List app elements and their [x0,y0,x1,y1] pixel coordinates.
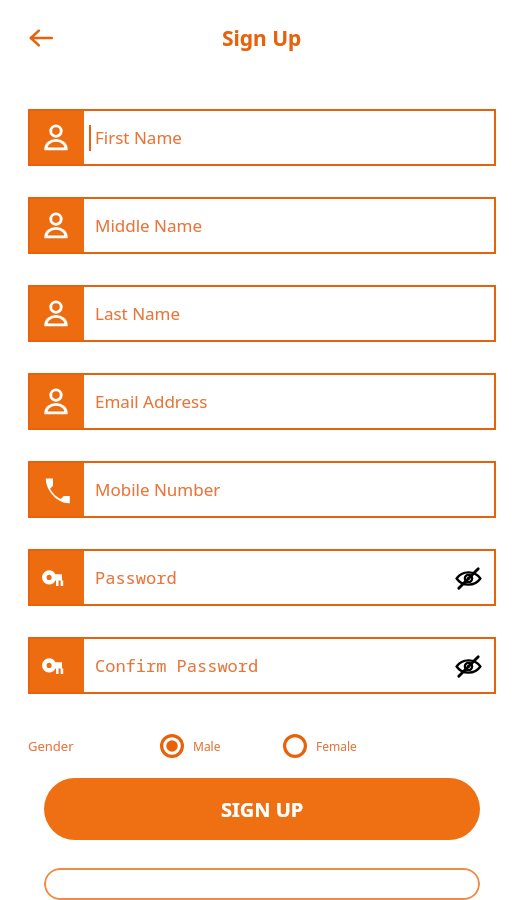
button[interactable]: Middle Name [28,197,496,254]
button[interactable]: Toggle password visibility [444,554,492,602]
staticText: Middle Name [95,214,203,237]
button[interactable]: SIGN UP [44,778,480,840]
button[interactable]: Back [20,17,62,59]
staticText: Last Name [95,302,181,325]
staticText: Sign Up [222,24,302,53]
staticText: Mobile Number [95,478,221,501]
button[interactable]: Mobile Number [28,461,496,518]
button[interactable]: Toggle password visibility [444,642,492,690]
staticText: SIGN UP [221,796,304,823]
button[interactable]: Confirm Password [28,637,496,694]
button[interactable]: First Name [28,109,496,166]
staticText: Email Address [95,390,208,413]
staticText: Female [316,738,357,754]
button[interactable] [44,868,480,900]
button[interactable]: Female [283,734,357,758]
staticText: First Name [95,126,182,149]
staticText: Male [193,738,221,754]
staticText: Confirm Password [95,654,259,677]
staticText: Gender [28,737,74,755]
button[interactable]: Last Name [28,285,496,342]
button[interactable]: Male [160,734,221,758]
button[interactable]: Email Address [28,373,496,430]
staticText: Password [95,566,177,589]
button[interactable]: Password [28,549,496,606]
